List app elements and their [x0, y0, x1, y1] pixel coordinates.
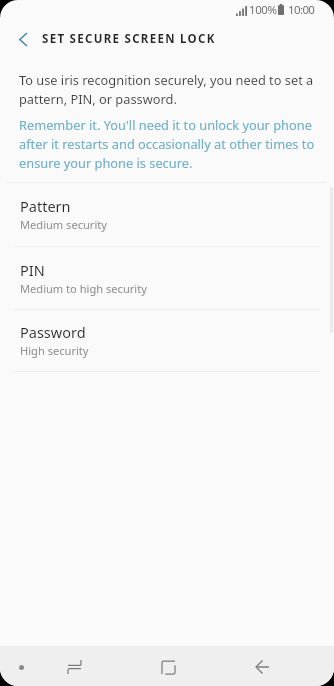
button[interactable]: Navigate up	[5, 20, 41, 58]
staticText: PIN	[20, 260, 45, 280]
button[interactable]: Recent apps	[54, 647, 94, 686]
staticText: Password	[20, 322, 86, 342]
staticText: High security	[20, 343, 89, 358]
staticText: Pattern	[20, 196, 71, 216]
button[interactable]: Home	[148, 647, 188, 686]
button[interactable]: PIN	[0, 247, 334, 309]
button[interactable]: Pattern	[0, 183, 334, 245]
staticText: To use iris recognition securely, you ne…	[19, 71, 315, 108]
button[interactable]: Back	[242, 647, 282, 686]
staticText: Medium to high security	[20, 281, 147, 296]
button[interactable]: Password	[0, 309, 334, 371]
staticText: 10:00	[288, 2, 315, 18]
staticText: SET SECURE SCREEN LOCK	[42, 31, 216, 47]
staticText: Remember it. You'll need it to unlock yo…	[19, 116, 315, 171]
staticText: Medium security	[20, 217, 107, 232]
staticText: 100%	[249, 2, 277, 18]
